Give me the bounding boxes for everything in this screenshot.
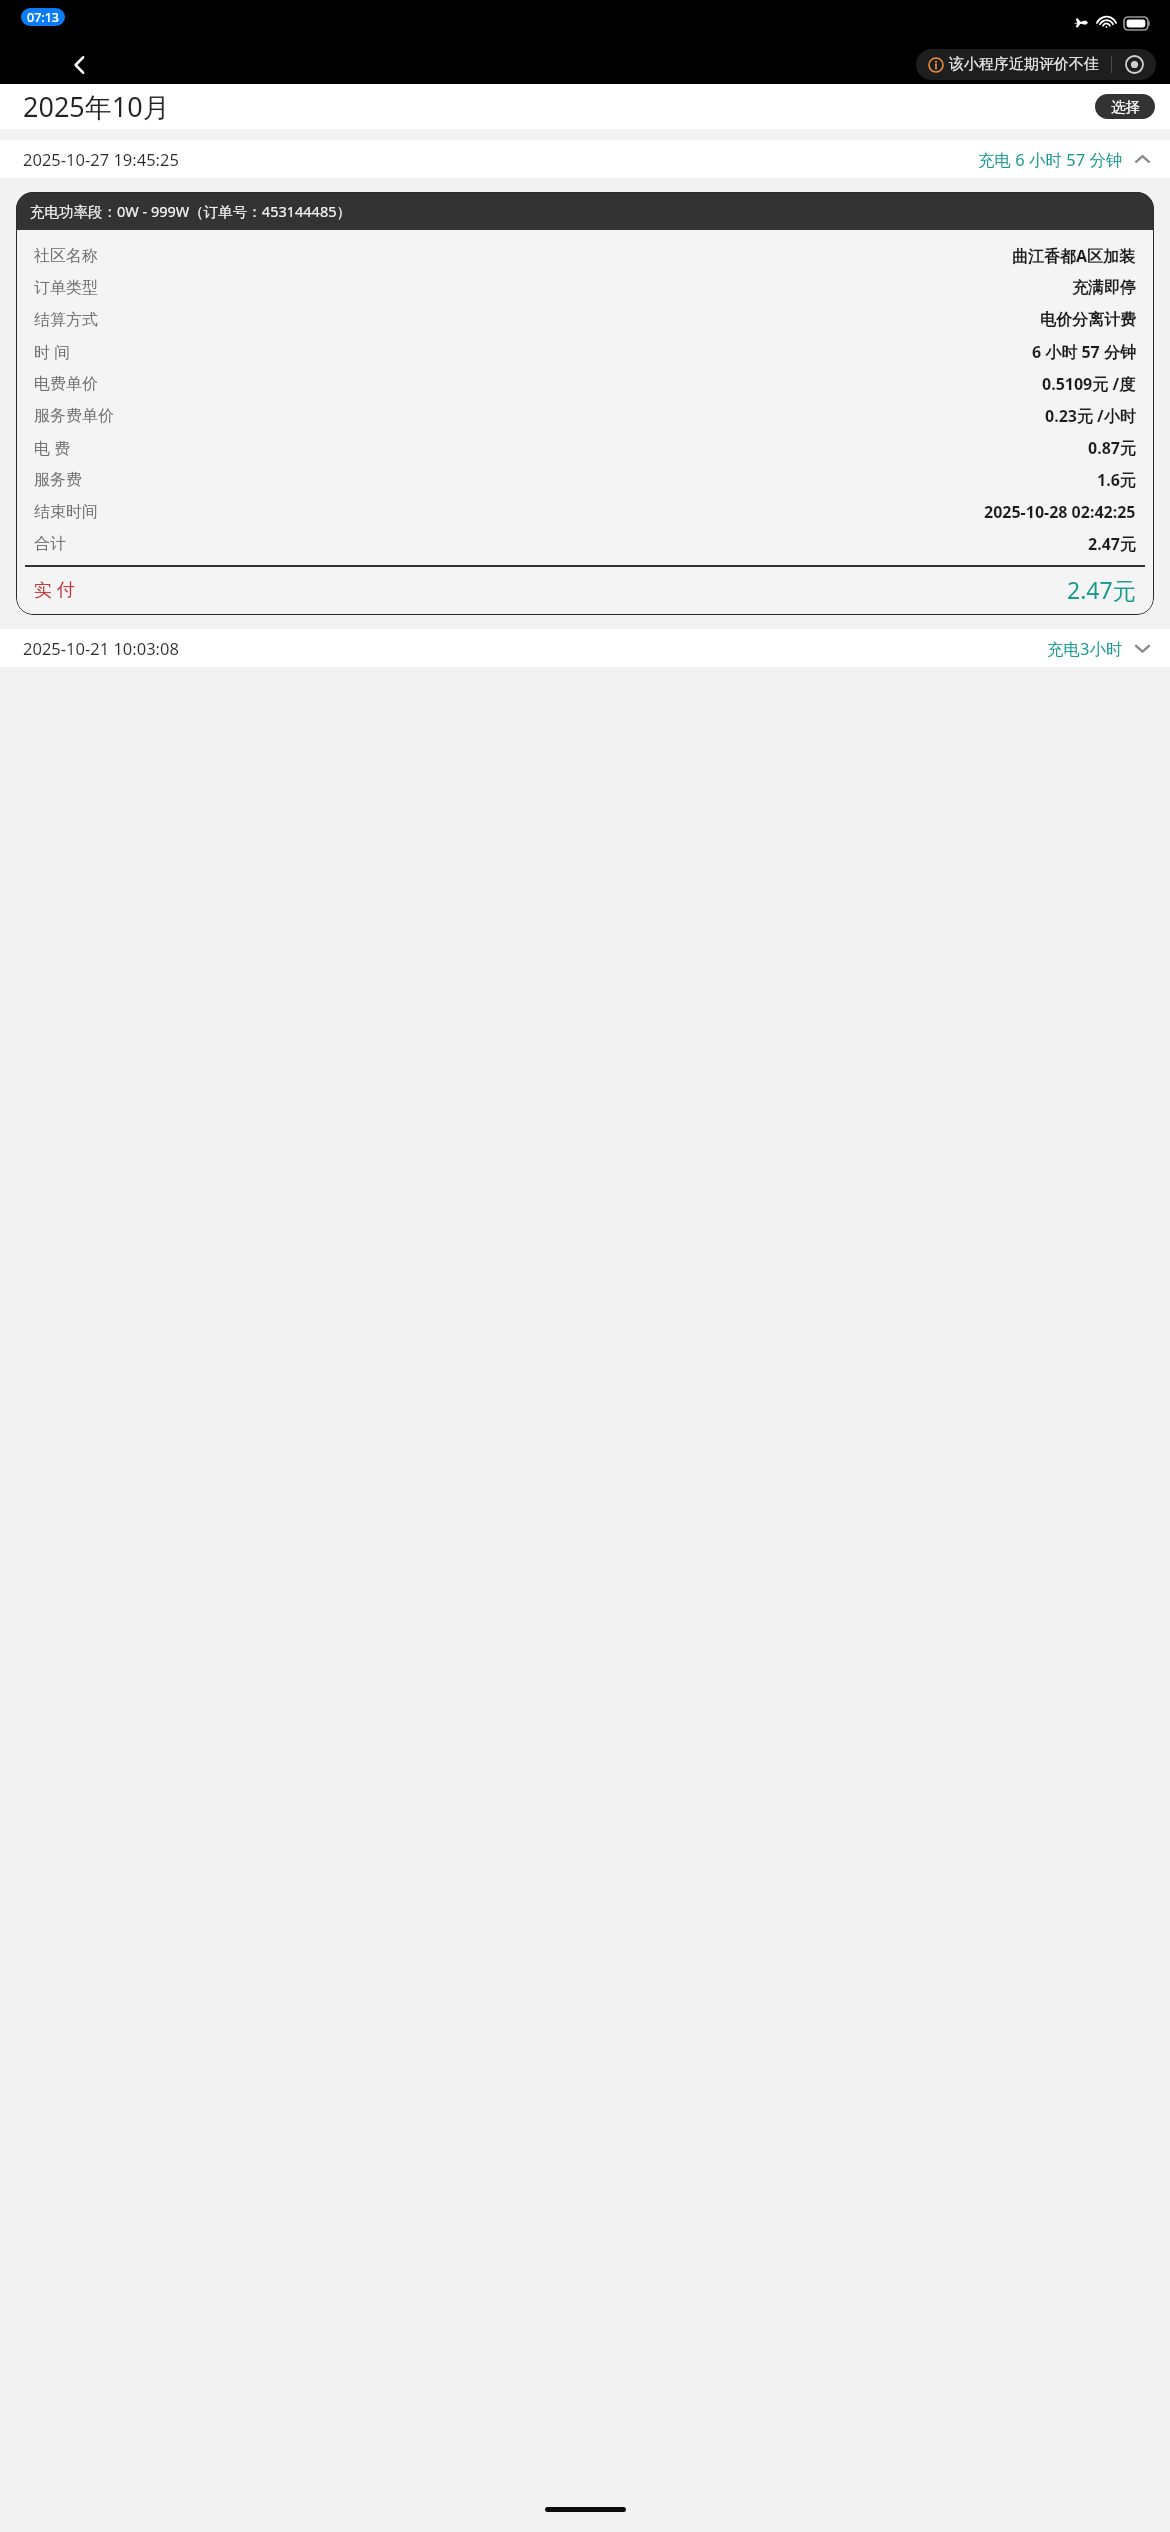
- staticText: 2.47元: [1088, 533, 1136, 555]
- staticText: 07:13: [27, 9, 60, 26]
- staticText: 电费单价: [34, 374, 98, 394]
- staticText: 2025-10-21 10:03:08: [23, 637, 179, 659]
- staticText: 合计: [34, 534, 66, 554]
- staticText: 曲江香都A区加装: [1012, 245, 1136, 267]
- staticText: 0.87元: [1088, 437, 1136, 459]
- staticText: 电价分离计费: [1040, 310, 1136, 330]
- staticText: 选择: [1111, 98, 1140, 116]
- staticText: 电 费: [34, 437, 71, 459]
- staticText: 2025-10-28 02:42:25: [984, 501, 1136, 523]
- staticText: 0.23元 /小时: [1045, 405, 1136, 427]
- staticText: 服务费: [34, 470, 82, 490]
- button[interactable]: 2025-10-27 19:45:25: [0, 140, 1170, 178]
- staticText: 6 小时 57 分钟: [1032, 341, 1136, 363]
- staticText: 2025-10-27 19:45:25: [23, 148, 179, 170]
- button[interactable]: 该小程序近期评价不佳: [916, 49, 1156, 80]
- staticText: 2025年10月: [23, 88, 170, 125]
- staticText: 0.5109元 /度: [1042, 373, 1136, 395]
- staticText: 该小程序近期评价不佳: [949, 55, 1099, 74]
- staticText: 订单类型: [34, 278, 98, 298]
- staticText: 充电功率段：0W - 999W（订单号：453144485）: [30, 201, 352, 221]
- staticText: 社区名称: [34, 246, 98, 266]
- button[interactable]: 充电功率段：0W - 999W（订单号：453144485）: [16, 192, 1154, 615]
- staticText: 服务费单价: [34, 406, 114, 426]
- other: More: [1112, 49, 1156, 80]
- staticText: 实 付: [34, 577, 75, 602]
- staticText: 充满即停: [1072, 278, 1136, 298]
- staticText: 2.47元: [1067, 574, 1136, 605]
- staticText: 1.6元: [1097, 469, 1136, 491]
- staticText: 充电3小时: [1047, 637, 1123, 660]
- button[interactable]: 选择: [1095, 94, 1155, 119]
- button[interactable]: 2025-10-21 10:03:08: [0, 629, 1170, 667]
- staticText: 时 间: [34, 341, 71, 363]
- button[interactable]: Back: [10, 45, 150, 84]
- staticText: 结算方式: [34, 310, 98, 330]
- staticText: 结束时间: [34, 502, 98, 522]
- staticText: 充电 6 小时 57 分钟: [978, 148, 1123, 171]
